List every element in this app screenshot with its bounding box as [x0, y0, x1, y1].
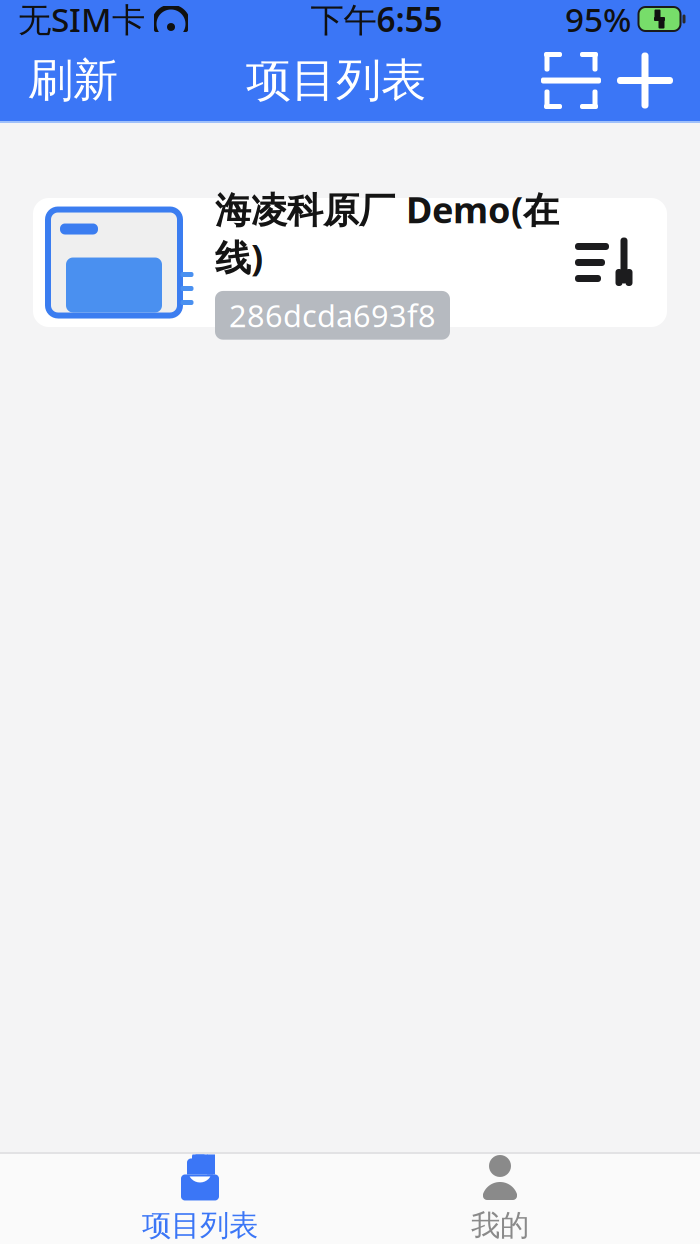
button[interactable]: 项目列表 [100, 1155, 300, 1243]
staticText: 刷新 [28, 53, 118, 108]
staticText: 项目列表 [142, 1207, 258, 1243]
staticText: 下午6:55 [310, 0, 442, 41]
button[interactable]: 刷新 [14, 41, 132, 120]
staticText: 我的 [471, 1207, 529, 1243]
button[interactable]: 我的 [400, 1155, 600, 1243]
staticText: 海凌科原厂 Demo(在线) [215, 185, 559, 281]
staticText: 95% [565, 0, 631, 41]
staticText: 无SIM卡 [18, 0, 145, 41]
button[interactable]: 海凌科原厂 Demo(在线) [33, 198, 667, 327]
staticText: 项目列表 [246, 53, 426, 108]
button[interactable]: 扫一扫 [540, 49, 602, 111]
staticText: 286dcda693f8 [229, 295, 436, 336]
button[interactable]: 添加 [602, 49, 676, 111]
